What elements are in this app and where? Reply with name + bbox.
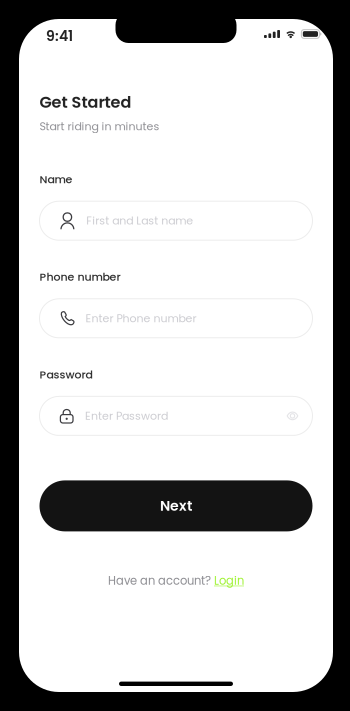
staticText: Name xyxy=(39,172,72,187)
staticText: Enter Phone number xyxy=(85,311,196,326)
staticText: Login xyxy=(214,573,244,589)
button[interactable]: Enter Password xyxy=(39,396,312,435)
staticText: Next xyxy=(160,496,192,516)
button[interactable]: First and Last name xyxy=(39,201,312,240)
staticText: Start riding in minutes xyxy=(39,119,159,134)
button[interactable]: Next xyxy=(39,480,312,531)
staticText: Enter Password xyxy=(85,408,168,424)
staticText: Have an account? xyxy=(108,573,214,589)
button[interactable]: Login xyxy=(214,573,244,589)
staticText: Get Started xyxy=(39,91,131,113)
staticText: First and Last name xyxy=(86,213,193,228)
staticText: Phone number xyxy=(39,269,120,285)
button[interactable]: Enter Phone number xyxy=(39,299,312,338)
staticText: Password xyxy=(39,367,92,382)
staticText: 9:41 xyxy=(46,26,73,46)
